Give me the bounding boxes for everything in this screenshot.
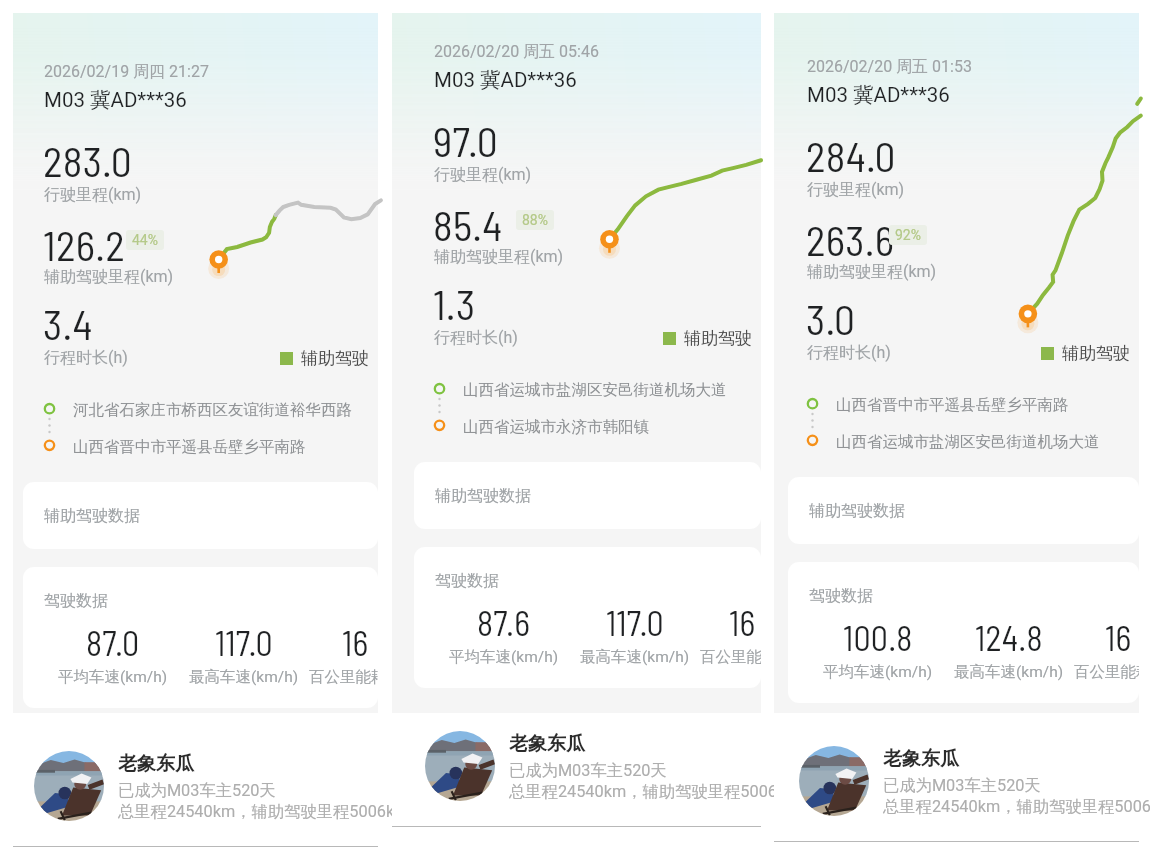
staticText: 已成为M03车主520天 [118, 780, 276, 801]
staticText: 老象东瓜 [883, 747, 959, 771]
staticText: 126.2 [43, 219, 125, 269]
staticText: 平均车速(km/h) [58, 667, 168, 687]
staticText: 已成为M03车主520天 [883, 775, 1041, 796]
button[interactable]: 辅助驾驶数据 [23, 482, 378, 549]
staticText: 92% [895, 227, 921, 243]
staticText: 山西省晋中市平遥县岳壁乡平南路 [836, 395, 1069, 415]
staticText: 87.6 [477, 602, 531, 643]
staticText: 辅助驾驶数据 [435, 486, 531, 506]
button[interactable]: 辅助驾驶数据 [788, 477, 1139, 544]
staticText: 284.0 [806, 130, 896, 180]
staticText: 97.0 [433, 115, 498, 165]
button[interactable]: 驾驶数据 [414, 547, 761, 688]
button[interactable]: 驾驶数据 [23, 567, 378, 708]
staticText: 辅助驾驶里程(km) [434, 247, 564, 267]
staticText: 辅助驾驶数据 [44, 506, 140, 526]
staticText: 平均车速(km/h) [449, 647, 559, 667]
staticText: 总里程24540km，辅助驾驶里程5006k [118, 801, 395, 822]
staticText: M03 冀AD***36 [434, 67, 577, 93]
staticText: 124.8 [975, 617, 1043, 658]
staticText: 2026/02/20 周五 05:46 [434, 42, 599, 62]
staticText: M03 冀AD***36 [44, 87, 187, 113]
staticText: 2026/02/19 周四 21:27 [44, 62, 209, 82]
button[interactable]: 驾驶数据 [788, 562, 1139, 703]
staticText: 百公里能耗(kWh) [700, 647, 761, 667]
staticText: 263.6 [806, 214, 895, 264]
staticText: 最高车速(km/h) [189, 667, 299, 687]
staticText: 河北省石家庄市桥西区友谊街道裕华西路 [73, 400, 352, 420]
staticText: 总里程24540km，辅助驾驶里程5006k [883, 796, 1150, 817]
staticText: 16 [342, 622, 369, 663]
staticText: 行驶里程(km) [807, 180, 905, 200]
staticText: 88% [522, 212, 548, 228]
staticText: 283.0 [43, 135, 132, 185]
staticText: 117.0 [606, 602, 664, 643]
staticText: 85.4 [433, 199, 503, 249]
staticText: 百公里能耗(kWh) [1074, 662, 1139, 682]
staticText: 驾驶数据 [809, 586, 873, 606]
staticText: 行程时长(h) [807, 343, 891, 363]
staticText: 山西省运城市盐湖区安邑街道机场大道 [463, 380, 727, 400]
staticText: 87.0 [86, 622, 140, 663]
staticText: 2026/02/20 周五 01:53 [807, 57, 972, 77]
staticText: 16 [1105, 617, 1132, 658]
staticText: 44% [132, 232, 158, 248]
staticText: 行程时长(h) [434, 328, 518, 348]
staticText: 辅助驾驶 [1062, 343, 1130, 364]
staticText: 3.0 [806, 293, 856, 343]
staticText: 山西省运城市永济市韩阳镇 [463, 417, 649, 437]
staticText: 辅助驾驶里程(km) [44, 267, 174, 287]
staticText: 驾驶数据 [44, 591, 108, 611]
staticText: 驾驶数据 [435, 571, 499, 591]
button[interactable]: 辅助驾驶数据 [414, 462, 761, 529]
staticText: 100.8 [843, 617, 913, 658]
staticText: 山西省晋中市平遥县岳壁乡平南路 [73, 437, 306, 457]
staticText: 1.3 [433, 278, 476, 328]
staticText: 最高车速(km/h) [580, 647, 690, 667]
staticText: 老象东瓜 [118, 752, 194, 776]
staticText: 总里程24540km，辅助驾驶里程5006k [509, 781, 786, 802]
staticText: 最高车速(km/h) [954, 662, 1064, 682]
staticText: 辅助驾驶数据 [809, 501, 905, 521]
staticText: 辅助驾驶 [684, 328, 752, 349]
staticText: 老象东瓜 [509, 732, 585, 756]
staticText: 已成为M03车主520天 [509, 760, 667, 781]
staticText: 平均车速(km/h) [823, 662, 933, 682]
staticText: 辅助驾驶 [301, 348, 369, 369]
staticText: 3.4 [43, 298, 93, 348]
staticText: 行驶里程(km) [434, 165, 532, 185]
staticText: 山西省运城市盐湖区安邑街道机场大道 [836, 432, 1100, 452]
staticText: 16 [729, 602, 756, 643]
staticText: M03 冀AD***36 [807, 82, 950, 108]
staticText: 辅助驾驶里程(km) [807, 262, 937, 282]
staticText: 117.0 [215, 622, 273, 663]
staticText: 百公里能耗(kWh) [309, 667, 378, 687]
staticText: 行驶里程(km) [44, 185, 142, 205]
staticText: 行程时长(h) [44, 348, 128, 368]
